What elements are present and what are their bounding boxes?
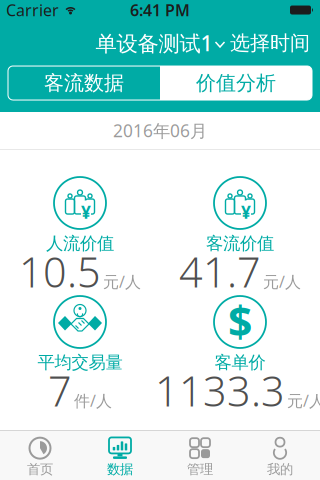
button[interactable]: 首页 [0,431,80,480]
button[interactable]: 单设备测试1 [95,29,224,57]
button[interactable]: 数据 [80,431,160,480]
button[interactable]: 价值分析 [160,66,312,100]
staticText: 平均交易量 [37,352,122,373]
staticText: 价值分析 [196,71,276,95]
staticText: 10.5 [19,244,101,299]
staticText: 41.7 [179,244,261,299]
staticText: 件/人 [74,390,112,411]
staticText: 客流数据 [44,71,124,95]
staticText: 7 [48,363,72,418]
staticText: 我的 [267,461,293,478]
staticText: 元/人 [287,390,320,411]
staticText: 人流价值 [46,233,114,254]
staticText: 2016年06月 [113,119,207,142]
staticText: ¥ [81,200,91,223]
staticText: 元/人 [263,271,301,292]
staticText: ¥ [241,200,251,223]
staticText: 6:41 PM [130,0,190,21]
button[interactable]: 客流数据 [8,66,160,100]
staticText: 1133.3 [155,363,285,418]
staticText: 数据 [107,461,133,478]
staticText: 选择时间 [230,31,310,55]
staticText: Carrier [6,0,59,21]
staticText: $ [228,293,252,349]
staticText: 客单价 [214,352,265,373]
staticText: 首页 [27,461,53,478]
button[interactable]: 我的 [240,431,320,480]
staticText: 管理 [187,461,213,478]
staticText: 单设备测试1 [95,29,212,57]
staticText: 客流价值 [206,233,274,254]
button[interactable]: 选择时间 [230,31,320,55]
staticText: 元/人 [103,271,141,292]
button[interactable]: 管理 [160,431,240,480]
